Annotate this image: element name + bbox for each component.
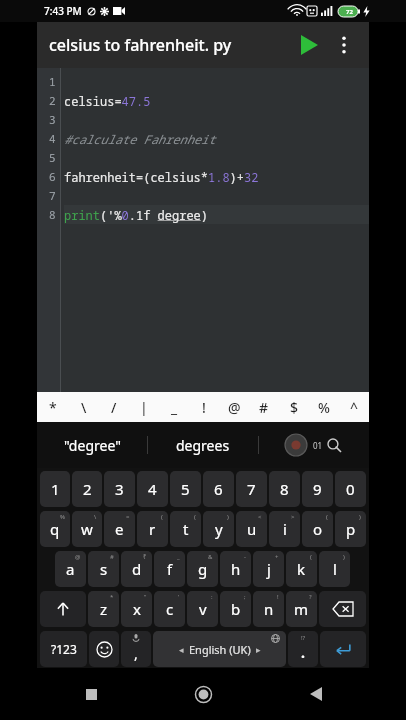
staticText: z	[100, 599, 108, 619]
button[interactable]: Search	[323, 434, 345, 456]
button[interactable]: "degree"	[37, 422, 147, 468]
button[interactable]: %	[309, 392, 339, 422]
button[interactable]: Run	[291, 27, 327, 63]
staticText: f	[167, 559, 173, 579]
button[interactable]: 3	[104, 471, 135, 507]
staticText: #	[259, 398, 269, 417]
staticText: b	[231, 599, 241, 619]
button[interactable]: \	[72, 511, 102, 547]
button[interactable]: (	[170, 511, 201, 547]
button[interactable]: /	[99, 392, 129, 422]
button[interactable]: !	[253, 591, 284, 627]
staticText: r	[149, 519, 156, 539]
button[interactable]: ;	[220, 591, 251, 627]
button[interactable]: Back	[294, 672, 338, 716]
button[interactable]: Recent apps	[69, 672, 113, 716]
staticText: 6	[214, 479, 223, 499]
staticText: &	[208, 553, 213, 561]
button[interactable]: *	[88, 591, 119, 627]
staticText: English (UK)	[189, 642, 251, 657]
button[interactable]: )	[203, 511, 234, 547]
button[interactable]: |	[129, 392, 159, 422]
button[interactable]: $	[279, 392, 309, 422]
button[interactable]: #	[249, 392, 279, 422]
button[interactable]: ?	[286, 591, 317, 627]
button[interactable]: '	[154, 591, 185, 627]
staticText: >	[291, 513, 295, 521]
button[interactable]: *	[37, 392, 68, 422]
button[interactable]: :	[187, 591, 218, 627]
button[interactable]: (	[302, 511, 333, 547]
button[interactable]: 4	[137, 471, 168, 507]
button[interactable]: )	[319, 551, 350, 587]
button[interactable]: Enter	[320, 631, 366, 667]
button[interactable]: _	[154, 551, 185, 587]
staticText: ?	[309, 593, 312, 601]
staticText: 3	[49, 112, 56, 127]
staticText: degrees	[176, 436, 230, 455]
button[interactable]: ^	[339, 392, 369, 422]
button[interactable]: )	[335, 511, 366, 547]
button[interactable]: @	[55, 551, 86, 587]
button[interactable]: @	[219, 392, 249, 422]
button[interactable]: 6	[203, 471, 234, 507]
staticText: !	[277, 593, 279, 601]
button[interactable]: ?123	[40, 631, 87, 667]
button[interactable]: 2	[72, 471, 102, 507]
button[interactable]: <	[236, 511, 267, 547]
button[interactable]: ₹	[121, 551, 152, 587]
button[interactable]: +	[253, 551, 284, 587]
button[interactable]: >	[269, 511, 300, 547]
button[interactable]: !?	[288, 631, 318, 667]
button[interactable]: 5	[170, 471, 201, 507]
staticText: h	[231, 559, 241, 579]
button[interactable]: "	[121, 591, 152, 627]
button[interactable]: 8	[269, 471, 300, 507]
staticText: 2	[83, 479, 92, 499]
staticText: 01	[313, 440, 323, 451]
staticText: x	[133, 599, 141, 619]
button[interactable]: !	[189, 392, 219, 422]
button[interactable]: -	[220, 551, 251, 587]
button[interactable]: ,	[121, 631, 151, 667]
button[interactable]: &	[187, 551, 218, 587]
button[interactable]: ◂	[153, 631, 286, 667]
staticText: a	[66, 559, 75, 579]
button[interactable]: Backspace	[319, 591, 366, 627]
button[interactable]: degrees	[148, 422, 258, 468]
staticText: '	[178, 593, 180, 601]
staticText: 9	[313, 479, 322, 499]
button[interactable]: More options	[327, 28, 361, 62]
staticText: d	[132, 559, 142, 579]
button[interactable]: Sticker	[283, 432, 309, 458]
button[interactable]: %	[40, 511, 70, 547]
staticText: #calculate Fahrenheit	[64, 131, 216, 147]
button[interactable]: \	[68, 392, 99, 422]
staticText: w	[81, 519, 93, 539]
staticText: %	[60, 513, 65, 521]
button[interactable]: (	[286, 551, 317, 587]
staticText: ^	[350, 398, 359, 417]
button[interactable]: 0	[335, 471, 366, 507]
button[interactable]: #	[88, 551, 119, 587]
staticText: @	[228, 398, 241, 417]
button[interactable]: 1	[40, 471, 70, 507]
button[interactable]: =	[104, 511, 135, 547]
staticText: ◂	[179, 645, 184, 655]
button[interactable]: Shift	[40, 591, 86, 627]
staticText: (	[326, 513, 328, 521]
button[interactable]: Home	[181, 672, 225, 716]
button[interactable]: 7	[236, 471, 267, 507]
staticText: celsius=47.5	[64, 93, 151, 109]
staticText: .	[301, 643, 305, 662]
staticText: $	[290, 398, 299, 417]
staticText: 1	[49, 74, 56, 89]
staticText: ,	[134, 644, 138, 663]
button[interactable]: _	[159, 392, 189, 422]
staticText: m	[294, 599, 309, 619]
button[interactable]: (	[137, 511, 168, 547]
button[interactable]: Emoji	[89, 631, 119, 667]
staticText: :	[211, 593, 213, 601]
button[interactable]: 9	[302, 471, 333, 507]
staticText: \	[94, 513, 97, 521]
